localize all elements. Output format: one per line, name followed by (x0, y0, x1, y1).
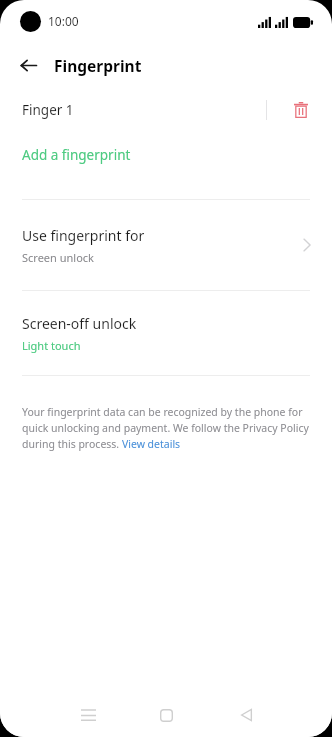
staticText: 10:00 (48, 13, 79, 29)
staticText: Finger 1 (22, 101, 74, 119)
button[interactable]: Back (226, 695, 266, 735)
button[interactable]: Back (12, 49, 44, 81)
staticText: Use fingerprint for (22, 226, 145, 245)
staticText: Screen unlock (22, 250, 94, 265)
staticText: Fingerprint (54, 55, 142, 76)
button[interactable]: Screen-off unlock (0, 291, 332, 375)
staticText: Add a fingerprint (22, 146, 131, 164)
button[interactable]: Add a fingerprint (0, 134, 332, 176)
staticText: Light touch (22, 338, 81, 353)
button[interactable]: Home (146, 695, 186, 735)
button[interactable]: Delete fingerprint (284, 93, 318, 127)
staticText: Screen-off unlock (22, 314, 137, 333)
staticText: Your fingerprint data can be recognized … (22, 405, 310, 451)
button[interactable]: Recent apps (68, 695, 108, 735)
button[interactable]: Use fingerprint for (0, 200, 332, 290)
